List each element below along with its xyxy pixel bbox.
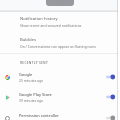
staticText: Notification history [20,16,58,22]
button[interactable]: Toggle Google [102,71,118,83]
button[interactable]: Notification history [0,16,120,36]
button[interactable]: Google [0,71,120,83]
button[interactable]: Permission controller [0,112,120,120]
staticText: Show recent and snoozed notifications [20,23,82,28]
staticText: 25 minutes ago [19,78,43,82]
staticText: On / Conversations can appear as floatin… [20,44,96,49]
staticText: Permission controller [19,113,59,118]
button[interactable]: Bubbles [0,37,120,57]
staticText: Bubbles [20,37,36,43]
staticText: RECENTLY SENT [20,60,49,64]
staticText: Google Play Store [19,92,52,97]
button[interactable]: Google Play Store [0,91,120,103]
staticText: Google [19,72,33,77]
button[interactable]: Toggle Google Play Store [102,91,118,103]
staticText: 39 minutes ago [19,98,43,102]
button[interactable]: Toggle Permission controller [102,112,118,120]
